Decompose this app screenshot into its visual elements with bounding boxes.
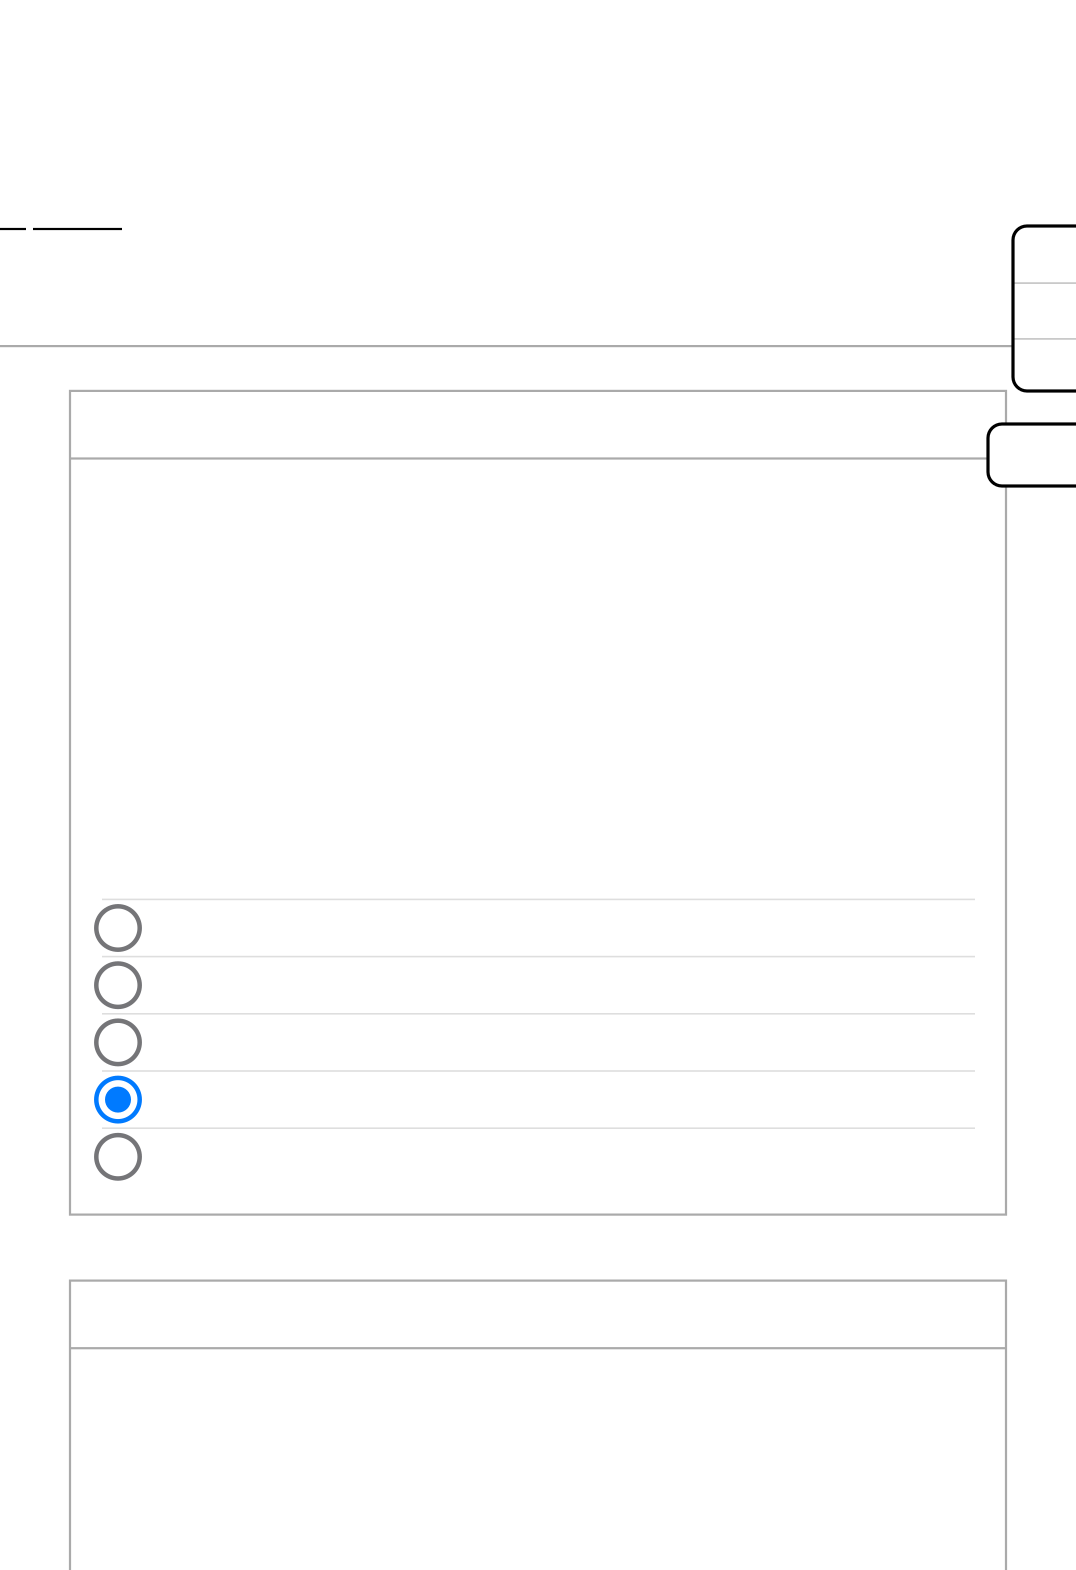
button[interactable]: Option 4, selected	[70, 1070, 1006, 1127]
button[interactable]: Option 1	[70, 899, 1006, 956]
button[interactable]: Option 3	[70, 1013, 1006, 1070]
button[interactable]: Menu item 3	[1013, 340, 1076, 391]
button[interactable]: Option 2	[70, 956, 1006, 1013]
button[interactable]: Option 5	[70, 1127, 1006, 1185]
button[interactable]: Menu item 1	[1013, 226, 1076, 282]
button[interactable]: Menu item 2	[1013, 284, 1076, 338]
button[interactable]: Back	[0, 209, 122, 249]
button[interactable]: Menu item	[988, 424, 1076, 486]
